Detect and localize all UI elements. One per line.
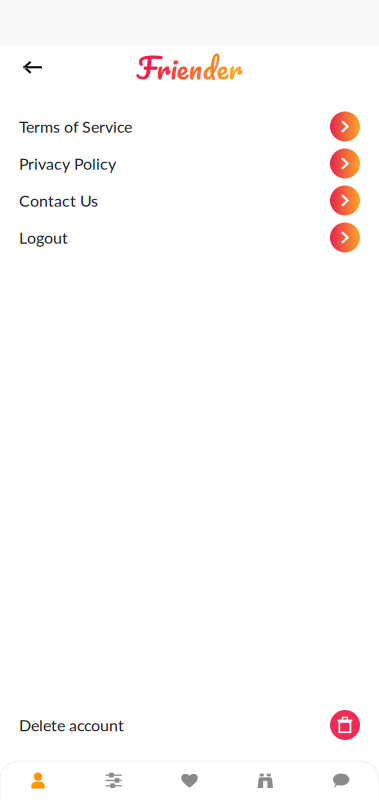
staticText: r <box>156 43 170 92</box>
button[interactable]: Terms of Service <box>0 108 379 145</box>
staticText: e <box>216 43 228 92</box>
button[interactable]: Filters <box>76 761 152 800</box>
button[interactable]: Privacy Policy <box>0 145 379 182</box>
button[interactable]: Messages <box>303 761 379 800</box>
button[interactable]: Discover <box>227 761 303 800</box>
staticText: Logout <box>19 228 68 247</box>
staticText: Contact Us <box>19 191 98 210</box>
staticText: d <box>202 43 216 92</box>
staticText: Privacy Policy <box>19 154 116 173</box>
staticText: n <box>188 43 202 92</box>
button[interactable]: Profile <box>0 761 76 800</box>
button[interactable]: Contact Us <box>0 182 379 219</box>
button[interactable]: Likes <box>152 761 227 800</box>
button[interactable]: Delete account <box>0 709 379 741</box>
staticText: i <box>170 43 176 92</box>
staticText: F <box>136 43 156 92</box>
button[interactable]: Logout <box>0 219 379 256</box>
staticText: e <box>176 43 188 92</box>
button[interactable]: Back <box>0 45 54 90</box>
staticText: Delete account <box>19 715 124 735</box>
staticText: Terms of Service <box>19 117 132 136</box>
staticText: r <box>228 43 242 92</box>
